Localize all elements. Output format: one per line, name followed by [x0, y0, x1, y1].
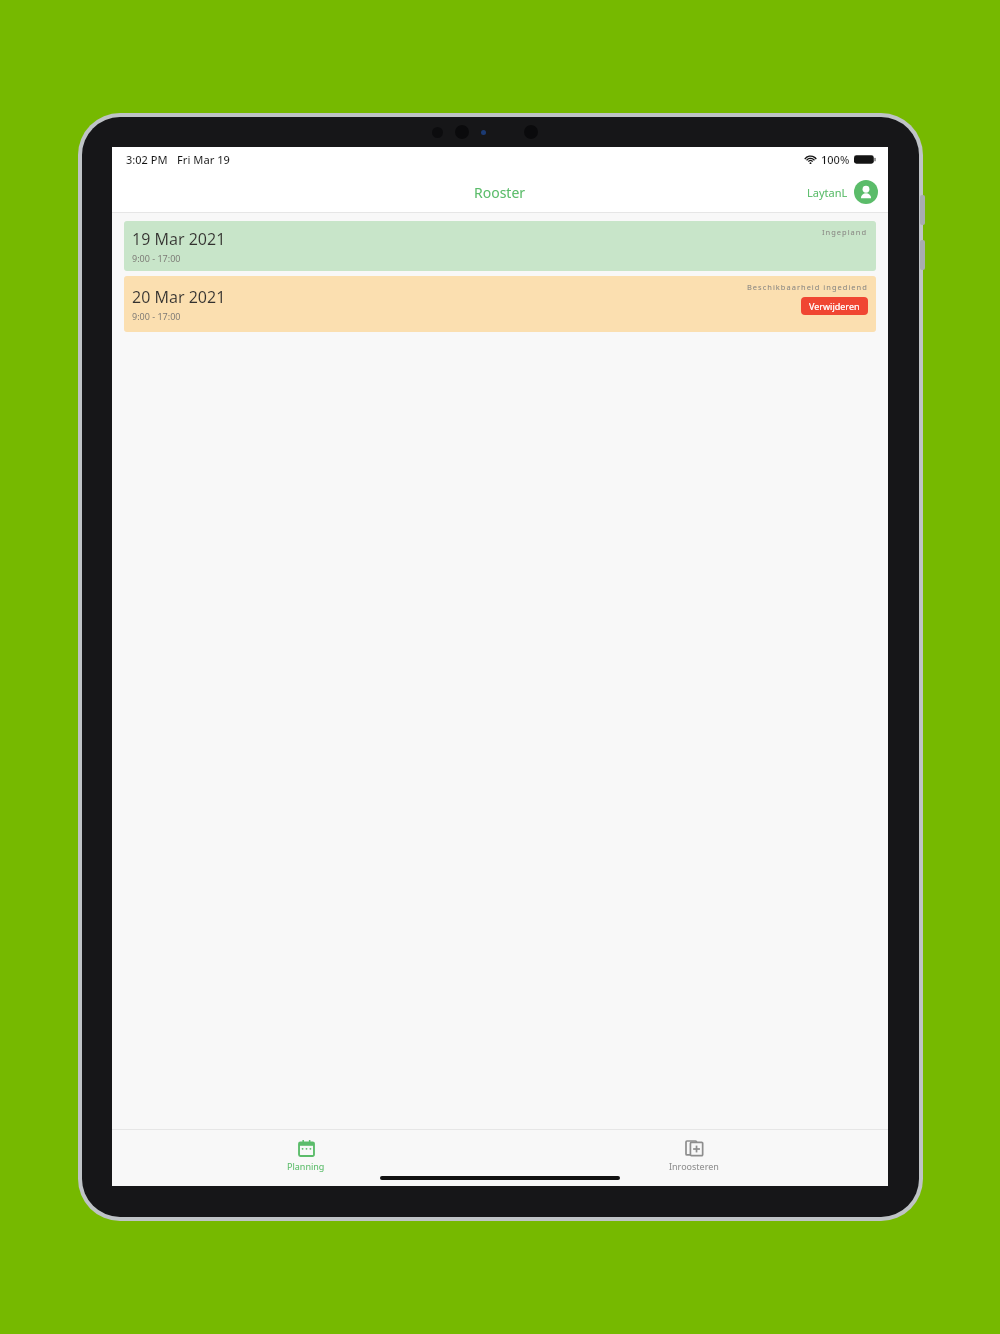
button[interactable]: LaytanL [807, 180, 878, 204]
button[interactable]: Inroosteren [653, 1138, 735, 1174]
staticText: Beschikbaarheid ingediend [747, 282, 868, 292]
other: Profile [854, 180, 878, 204]
staticText: Rooster [474, 183, 526, 202]
staticText: 20 Mar 2021 [132, 286, 226, 308]
staticText: Inroosteren [669, 1160, 719, 1172]
staticText: 19 Mar 2021 [132, 228, 226, 250]
staticText: Verwijderen [809, 300, 860, 312]
staticText: LaytanL [807, 185, 848, 200]
button[interactable]: 20 Mar 2021 [124, 276, 876, 332]
button[interactable]: 19 Mar 2021 [124, 221, 876, 271]
staticText: 3:02 PM [126, 152, 168, 167]
staticText: Planning [287, 1160, 325, 1172]
button[interactable]: Verwijderen [801, 297, 868, 315]
staticText: 9:00 - 17:00 [132, 252, 181, 264]
staticText: 9:00 - 17:00 [132, 310, 181, 322]
staticText: Ingepland [822, 227, 868, 237]
staticText: Fri Mar 19 [177, 152, 230, 167]
staticText: 100% [821, 152, 850, 167]
button[interactable]: Planning [271, 1138, 341, 1174]
